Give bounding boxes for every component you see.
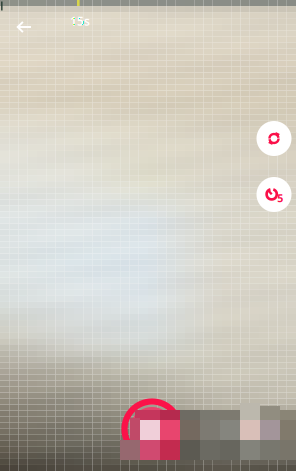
button[interactable]: Back <box>6 9 42 45</box>
button[interactable]: Record <box>124 401 180 457</box>
button[interactable]: Timer <box>256 177 291 212</box>
staticText: 5 <box>277 191 283 205</box>
button[interactable]: 15s <box>63 11 97 31</box>
staticText: 15s <box>70 13 90 29</box>
button[interactable]: Flip camera <box>256 121 291 156</box>
